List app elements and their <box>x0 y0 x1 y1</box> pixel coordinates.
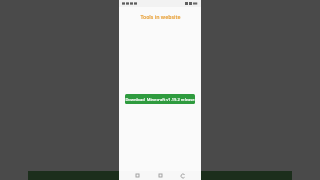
button[interactable]: Download Minecraft v1.19.2 release <box>125 94 195 104</box>
staticText: Download Minecraft v1.19.2 release <box>125 97 195 102</box>
button[interactable]: Home <box>156 171 165 180</box>
staticText: Tools in website <box>140 13 181 20</box>
button[interactable]: Back <box>178 171 187 180</box>
button[interactable]: Recents <box>133 171 142 180</box>
